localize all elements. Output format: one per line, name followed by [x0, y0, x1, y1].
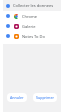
button[interactable]: Galerie [3, 21, 61, 31]
staticText: Chrome [22, 14, 37, 19]
button[interactable]: Chrome [3, 11, 61, 21]
staticText: Notes To Do [22, 34, 45, 39]
staticText: Annuler [10, 95, 24, 100]
button[interactable]: Notes To Do [3, 31, 61, 41]
button[interactable]: Annuler [7, 93, 27, 102]
staticText: Supprimer [36, 95, 54, 100]
button[interactable]: Collecter les donnees [3, 0, 61, 11]
button[interactable]: Supprimer [33, 93, 57, 102]
staticText: Collecter les donnees [13, 3, 54, 8]
staticText: Galerie [22, 24, 36, 29]
